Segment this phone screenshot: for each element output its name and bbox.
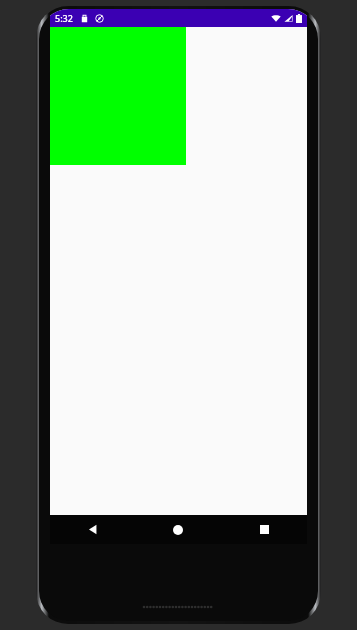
button[interactable]: Home xyxy=(135,515,221,544)
button[interactable]: Back xyxy=(50,515,135,544)
button[interactable]: Recent apps xyxy=(221,515,307,544)
staticText: 5:32 xyxy=(55,12,73,24)
